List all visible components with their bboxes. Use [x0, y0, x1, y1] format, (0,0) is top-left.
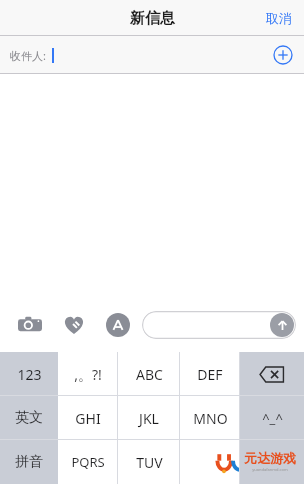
button[interactable]: 拼音	[0, 440, 58, 484]
button[interactable]: JKL	[118, 396, 180, 440]
button[interactable]: Send	[142, 311, 296, 339]
button[interactable]: MNO	[180, 396, 240, 440]
button[interactable]: 123	[0, 352, 58, 396]
button[interactable]	[180, 440, 240, 484]
button[interactable]: GHI	[58, 396, 118, 440]
staticText: 新信息	[130, 9, 175, 28]
button[interactable]: DEF	[180, 352, 240, 396]
button[interactable]: PQRS	[58, 440, 118, 484]
button[interactable]: ^_^	[240, 396, 304, 440]
button[interactable]: ,。?!	[58, 352, 118, 396]
staticText: TUV	[136, 453, 163, 472]
button[interactable]: 元达游戏	[240, 440, 304, 484]
staticText: 英文	[15, 409, 43, 427]
staticText: GHI	[75, 409, 101, 428]
button[interactable]: 英文	[0, 396, 58, 440]
staticText: ^_^	[262, 409, 283, 427]
button[interactable]: Apps	[96, 303, 140, 347]
button[interactable]: 取消	[254, 4, 304, 32]
staticText: ABC	[136, 365, 163, 384]
staticText: 拼音	[15, 453, 43, 471]
button[interactable]: Backspace	[240, 352, 304, 396]
staticText: PQRS	[71, 453, 105, 471]
staticText: 取消	[266, 10, 292, 26]
staticText: ,。?!	[74, 365, 102, 384]
button[interactable]: Camera	[8, 303, 52, 347]
staticText: 元达游戏	[244, 450, 296, 466]
staticText: yuandafanmd.com	[252, 467, 288, 472]
button[interactable]: 收件人:	[0, 36, 304, 74]
staticText: DEF	[197, 365, 223, 384]
button[interactable]: Send	[270, 313, 294, 337]
button[interactable]: ABC	[118, 352, 180, 396]
button[interactable]: TUV	[118, 440, 180, 484]
staticText: 123	[17, 365, 42, 384]
button[interactable]: Digital Touch	[52, 303, 96, 347]
staticText: JKL	[139, 409, 159, 428]
staticText: MNO	[193, 409, 228, 428]
staticText: 收件人:	[10, 48, 46, 63]
button[interactable]: Add contact	[270, 42, 296, 68]
